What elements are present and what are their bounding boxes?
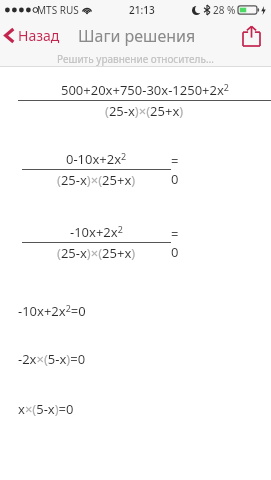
staticText: Шаги решения bbox=[78, 25, 196, 47]
button[interactable]: Назад bbox=[0, 20, 66, 51]
staticText: 0-10x+2x2 bbox=[66, 150, 127, 168]
staticText: 21:13 bbox=[129, 3, 155, 17]
staticText: 28 % bbox=[213, 3, 236, 17]
staticText: (25-x)×(25+x) bbox=[57, 244, 136, 262]
staticText: 500+20x+750-30x-1250+2x2 bbox=[61, 81, 229, 99]
staticText: Назад bbox=[18, 26, 60, 45]
staticText: Решить уравнение относитель… bbox=[57, 52, 214, 66]
staticText: x×(5-x)=0 bbox=[18, 400, 74, 418]
button[interactable]: Share bbox=[231, 20, 271, 51]
staticText: MTS RUS bbox=[37, 3, 79, 17]
staticText: -10x+2x2=0 bbox=[18, 302, 86, 320]
staticText: -10x+2x2 bbox=[70, 223, 123, 241]
staticText: (25-x)×(25+x) bbox=[105, 102, 184, 120]
staticText: (25-x)×(25+x) bbox=[57, 171, 136, 189]
staticText: -2x×(5-x)=0 bbox=[18, 350, 86, 368]
